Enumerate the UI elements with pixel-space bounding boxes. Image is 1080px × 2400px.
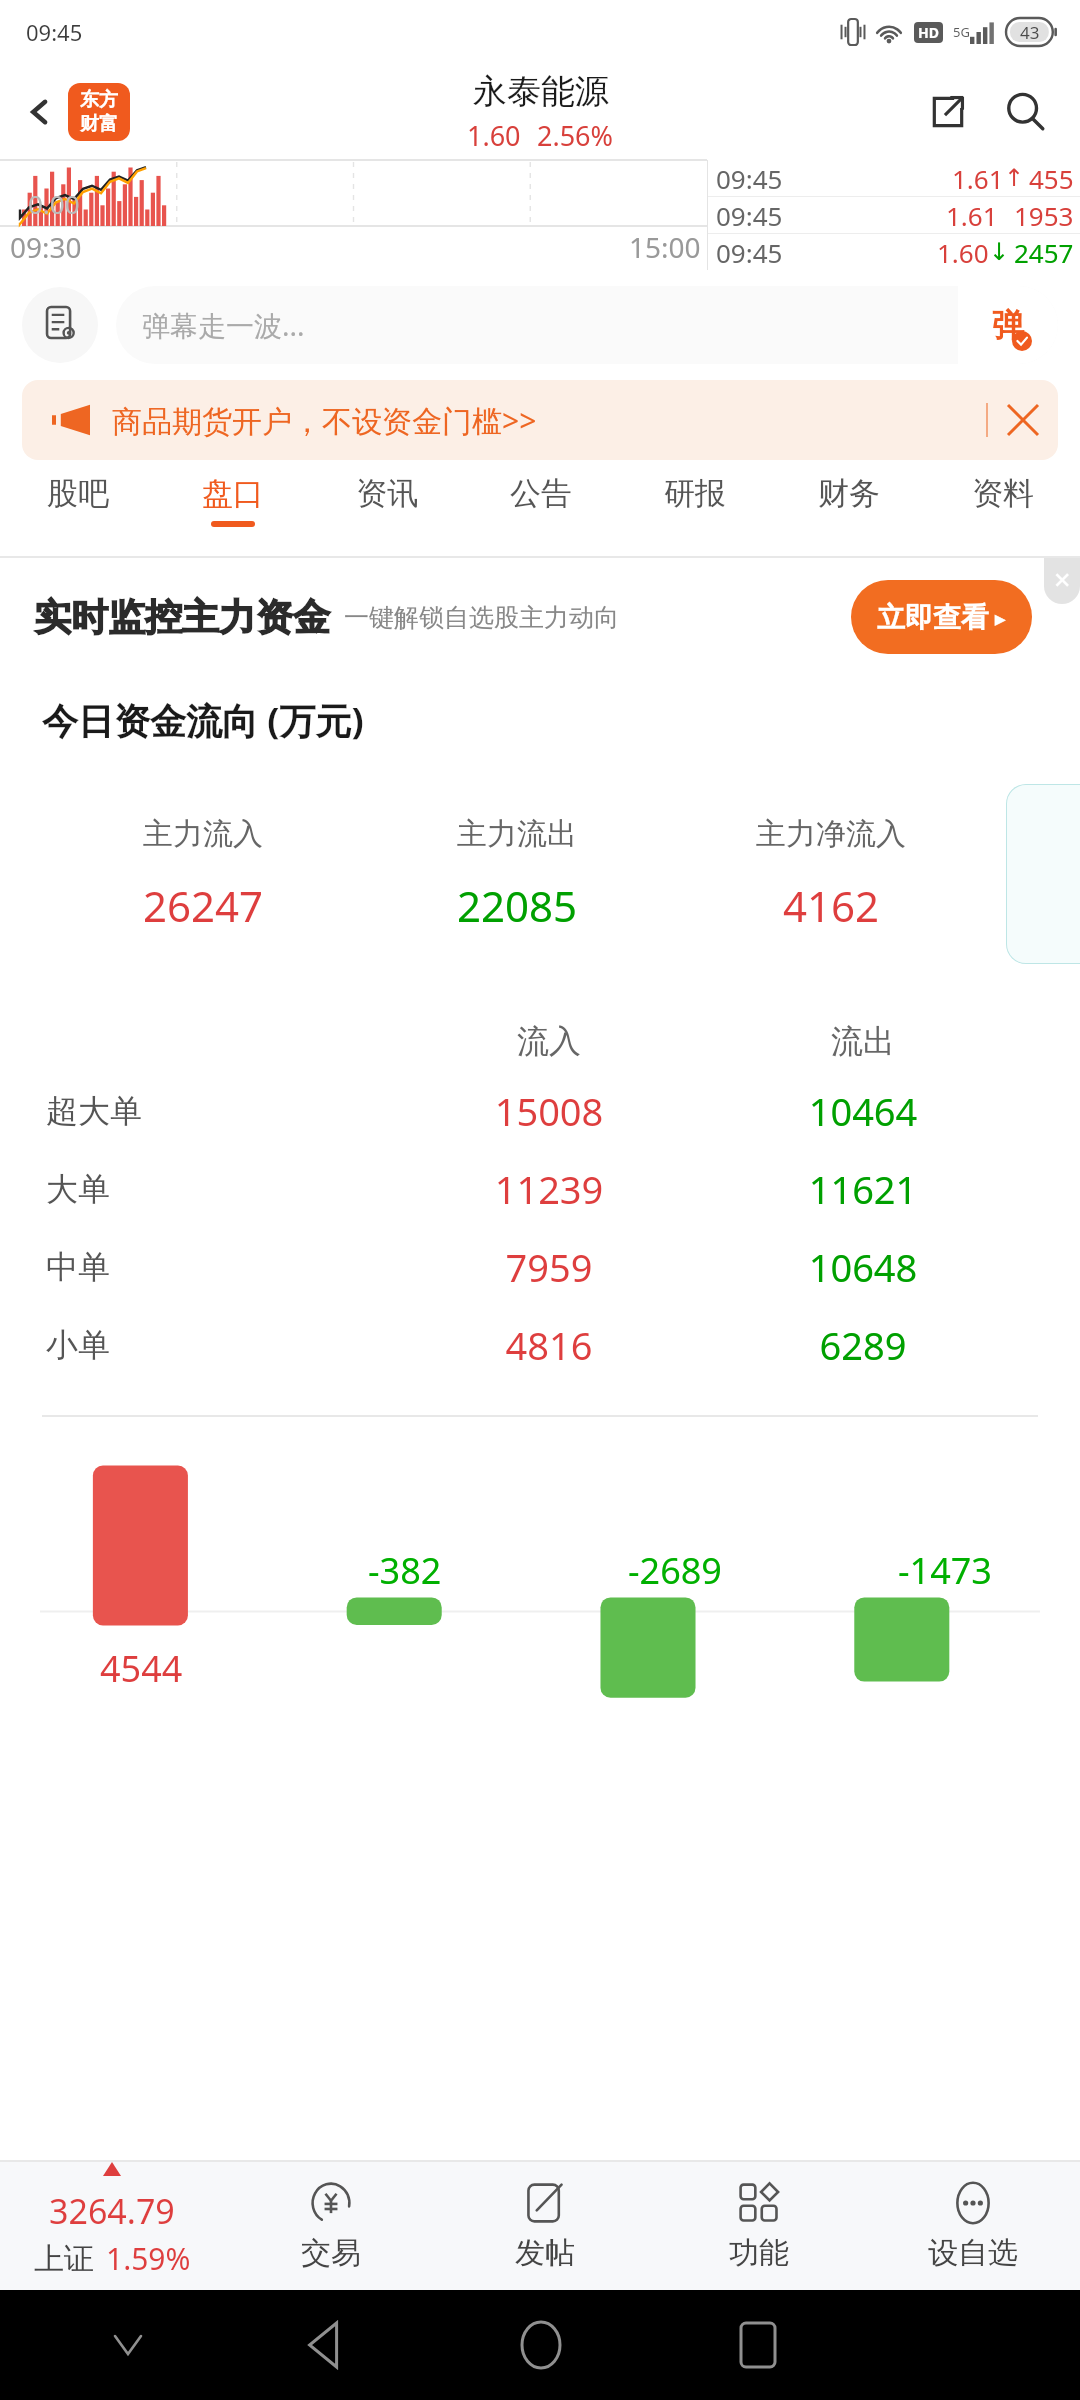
staticText: ▸ [989, 602, 1006, 632]
button[interactable]: 超大单 [46, 1083, 1020, 1139]
button[interactable]: 研报 [618, 474, 772, 556]
staticText: -382 [368, 1546, 442, 1595]
staticText: 15:00 [629, 228, 701, 266]
button[interactable]: 功能 [652, 2162, 866, 2290]
staticText: 中单 [46, 1247, 392, 1287]
staticText: 2.56% [537, 117, 614, 154]
staticText: 1.59% [106, 2238, 191, 2279]
staticText: 1953 [1014, 198, 1074, 233]
staticText: 研报 [664, 474, 726, 513]
staticText: 09:45 [716, 161, 783, 196]
staticText: 09:45 [26, 17, 83, 47]
staticText: 4544 [100, 1644, 183, 1693]
button[interactable]: 实时监控主力资金 [34, 558, 1060, 676]
button[interactable]: 中单 [46, 1239, 1020, 1295]
staticText: 2457 [1014, 235, 1074, 270]
staticText: 09:45 [716, 198, 783, 233]
button[interactable]: Notes [22, 287, 98, 363]
staticText: -2689 [628, 1546, 722, 1595]
staticText: 43 [1020, 21, 1040, 44]
staticText: 商品期货开户，不设资金门槛>> [112, 400, 986, 441]
staticText: 7959 [392, 1241, 706, 1293]
staticText: 实时监控主力资金 [34, 594, 330, 641]
button[interactable]: 股吧 [0, 474, 155, 556]
staticText: 6289 [706, 1319, 1020, 1371]
button[interactable]: 设自选 [866, 2162, 1080, 2290]
button[interactable]: 财务 [772, 474, 926, 556]
staticText: 1.60 [937, 235, 989, 270]
button[interactable]: Share [916, 80, 980, 144]
button[interactable] [12, 87, 66, 137]
staticText: 1.60 [467, 117, 521, 154]
staticText: 财务 [818, 474, 880, 513]
staticText: 功能 [729, 2234, 789, 2272]
button[interactable]: Search [994, 80, 1058, 144]
button[interactable]: 小单 [46, 1317, 1020, 1373]
staticText: 小单 [46, 1325, 392, 1365]
staticText: 股吧 [47, 474, 109, 513]
staticText: 资料 [972, 474, 1034, 513]
staticText: ↑ [1004, 164, 1025, 192]
staticText: 发帖 [515, 2234, 575, 2272]
staticText: 弹幕走一波... [142, 306, 958, 344]
staticText: 立即查看 [877, 600, 989, 635]
staticText: 上证 [34, 2240, 94, 2278]
staticText: 11239 [392, 1163, 706, 1215]
staticText: 永泰能源 [473, 70, 609, 113]
button[interactable]: 主力流入 [46, 771, 988, 977]
staticText: 09:45 [716, 235, 783, 270]
staticText: 1.61 [946, 198, 998, 233]
staticText: 一键解锁自选股主力动向 [344, 602, 619, 633]
staticText: 3264.79 [49, 2188, 175, 2234]
button[interactable]: 盘口 [155, 474, 310, 556]
staticText: 大单 [46, 1169, 392, 1209]
staticText: 09:30 [10, 228, 82, 266]
staticText: 主力流出 [457, 815, 577, 853]
staticText: 今日资金流向 (万元) [42, 696, 364, 745]
staticText: 5G [953, 23, 970, 41]
staticText: 交易 [301, 2234, 361, 2272]
button[interactable]: 资料 [926, 474, 1080, 556]
staticText: HD [918, 23, 939, 42]
staticText: 资讯 [356, 474, 418, 513]
staticText: 10464 [706, 1085, 1020, 1137]
button[interactable]: 商品期货开户，不设资金门槛>> [22, 380, 1058, 460]
staticText: ✕ [1053, 568, 1072, 594]
staticText: 0.00 [28, 186, 80, 221]
button[interactable]: 发帖 [438, 2162, 652, 2290]
staticText: 设自选 [928, 2234, 1018, 2272]
staticText: 主力净流入 [756, 815, 906, 853]
staticText: 主力流入 [143, 815, 263, 853]
staticText: 流出 [706, 1021, 1020, 1061]
button[interactable]: 交易 [224, 2162, 438, 2290]
button[interactable]: 东方 [68, 83, 130, 141]
button[interactable]: 大单 [46, 1161, 1020, 1217]
staticText: 26247 [143, 877, 264, 934]
button[interactable]: 资讯 [310, 474, 464, 556]
staticText: 1.61 [952, 161, 1004, 196]
staticText: 11621 [706, 1163, 1020, 1215]
staticText: 财富 [80, 112, 118, 136]
staticText: 盘口 [202, 474, 264, 513]
button[interactable]: 公告 [464, 474, 618, 556]
button[interactable]: Close promo [1044, 558, 1080, 604]
staticText: -1473 [898, 1546, 992, 1595]
staticText: 4162 [783, 877, 880, 934]
button[interactable]: 3264.79 [0, 2162, 224, 2290]
staticText: 4816 [392, 1319, 706, 1371]
staticText: 流入 [392, 1021, 706, 1061]
button[interactable]: 弹幕走一波... [116, 286, 1058, 364]
staticText: 10648 [706, 1241, 1020, 1293]
staticText: 公告 [510, 474, 572, 513]
staticText: 22085 [457, 877, 578, 934]
staticText: 弹 [992, 305, 1024, 345]
staticText: 455 [1029, 161, 1074, 196]
staticText: 东方 [80, 88, 118, 112]
staticText: 超大单 [46, 1091, 392, 1131]
staticText: 15008 [392, 1085, 706, 1137]
button[interactable]: Close ad [988, 385, 1058, 455]
button[interactable]: 立即查看 [851, 580, 1032, 654]
staticText: ↓ [989, 238, 1010, 266]
